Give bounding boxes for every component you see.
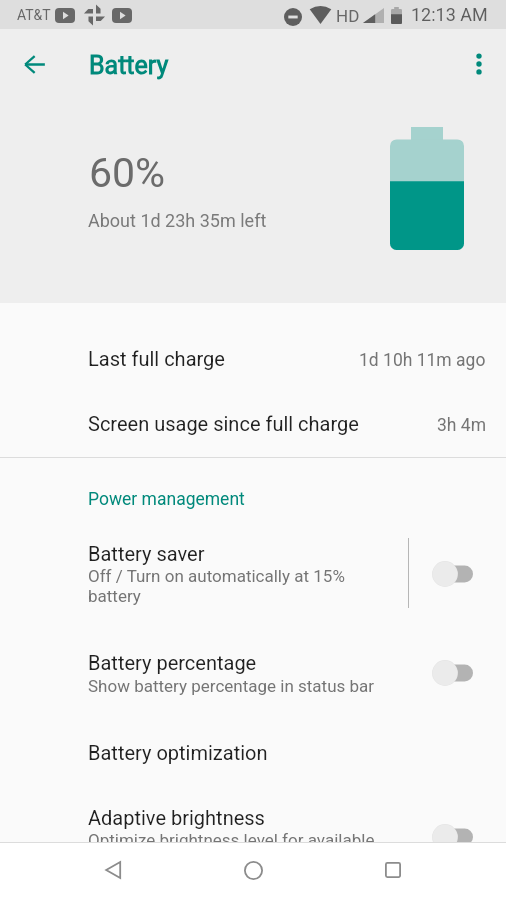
button[interactable]: Back: [86, 843, 140, 897]
staticText: Battery saver: [88, 542, 205, 565]
staticText: About 1d 23h 35m left: [88, 210, 267, 231]
staticText: 1d 10h 11m ago: [359, 350, 486, 371]
staticText: Screen usage since full charge: [88, 412, 359, 435]
staticText: Show battery percentage in status bar: [88, 676, 375, 696]
staticText: Battery optimization: [88, 741, 268, 764]
button[interactable]: [0, 324, 506, 390]
button[interactable]: [0, 527, 506, 619]
button[interactable]: [0, 390, 506, 456]
staticText: Power management: [88, 489, 245, 510]
button[interactable]: More options: [455, 40, 503, 88]
button[interactable]: Battery saver switch: [418, 552, 490, 596]
button[interactable]: [0, 786, 506, 856]
staticText: 60%: [89, 149, 166, 197]
staticText: HD: [336, 6, 360, 26]
staticText: Last full charge: [88, 347, 225, 370]
button[interactable]: [0, 718, 506, 774]
button[interactable]: Navigate up: [11, 40, 59, 88]
staticText: 12:13 AM: [411, 4, 488, 25]
button[interactable]: Home: [226, 843, 280, 897]
button[interactable]: [0, 630, 506, 706]
button[interactable]: Recent apps: [366, 843, 420, 897]
button[interactable]: Battery percentage switch: [418, 651, 490, 695]
staticText: 3h 4m: [437, 415, 486, 436]
staticText: Optimize brightness level for available: [88, 830, 375, 850]
staticText: Battery: [89, 51, 169, 80]
staticText: Adaptive brightness: [88, 806, 265, 829]
button[interactable]: Adaptive brightness switch: [418, 815, 490, 859]
staticText: AT&T: [17, 7, 51, 23]
staticText: Off / Turn on automatically at 15% batte…: [88, 566, 356, 606]
staticText: Battery percentage: [88, 651, 257, 674]
